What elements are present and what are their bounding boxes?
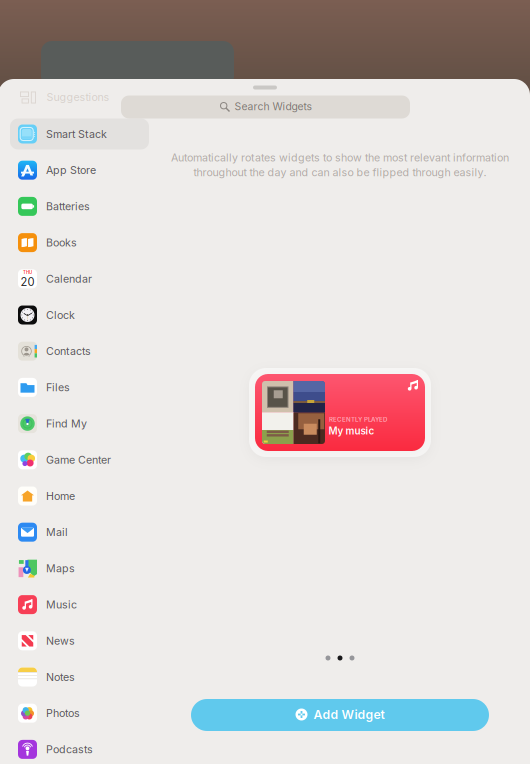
staticText: Photos [46,707,80,720]
button[interactable]: Files [10,372,149,403]
button[interactable]: Search Widgets [121,95,410,118]
staticText: THU [23,270,32,275]
staticText: Automatically rotates widgets to show th… [171,151,509,164]
staticText: Music [46,598,77,611]
staticText: My music [328,425,374,437]
button[interactable]: Notes [10,661,149,692]
staticText: News [46,634,75,647]
staticText: Add Widget [313,707,384,722]
button[interactable]: Smart Stack [10,118,149,149]
staticText: Home [46,489,75,502]
staticText: Find My [46,417,87,430]
staticText: Mail [46,526,68,539]
button[interactable]: Contacts [10,336,149,367]
button[interactable]: THU [10,263,149,294]
staticText: App Store [46,164,96,177]
staticText: Search Widgets [234,100,311,113]
button[interactable]: Clock [10,299,149,330]
staticText: RECENTLY PLAYED [329,416,387,423]
staticText: Podcasts [46,743,93,756]
button[interactable]: Add Widget [191,699,489,731]
button[interactable]: Find My [10,408,149,439]
button[interactable]: Home [10,480,149,511]
button[interactable]: Maps [10,553,149,584]
button[interactable]: Books [10,227,149,258]
staticText: 20 [20,275,34,289]
staticText: Suggestions [46,90,109,103]
button[interactable]: News [10,625,149,656]
staticText: Files [46,381,70,394]
staticText: Batteries [46,200,90,213]
staticText: Notes [46,670,75,683]
button[interactable]: Batteries [10,191,149,222]
staticText: throughout the day and can also be flipp… [193,166,486,179]
staticText: Contacts [46,345,91,358]
staticText: Smart Stack [46,127,107,140]
staticText: Clock [46,308,75,321]
staticText: Books [46,236,77,249]
staticText: Maps [46,562,75,575]
button[interactable]: Photos [10,698,149,729]
staticText: Calendar [46,272,92,285]
button[interactable]: Music [10,589,149,620]
button[interactable]: App Store [10,155,149,186]
button[interactable]: Mail [10,517,149,548]
button[interactable]: Game Center [10,444,149,475]
staticText: Game Center [46,453,111,466]
button[interactable]: Podcasts [10,734,149,764]
